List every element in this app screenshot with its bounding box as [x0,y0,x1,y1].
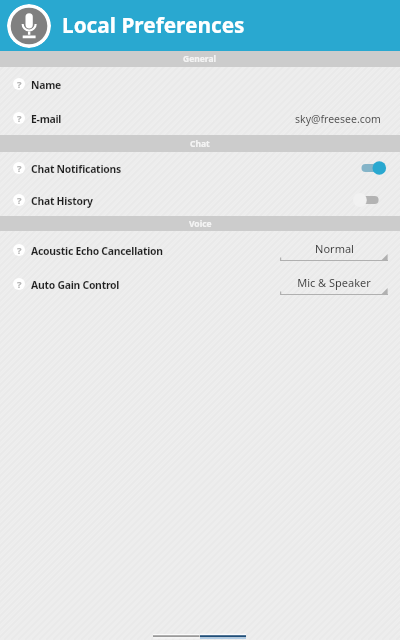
staticText: Mic & Speaker [297,275,371,290]
staticText: Local Preferences [62,11,245,39]
button[interactable]: ? [0,67,400,101]
button[interactable]: Off [353,190,389,210]
staticText: Acoustic Echo Cancellation [31,244,163,258]
staticText: Chat [190,138,210,150]
button[interactable]: ? [0,233,400,267]
button[interactable]: Mic & Speaker [280,269,388,299]
button[interactable]: ? [0,152,400,184]
staticText: E-mail [31,112,62,126]
staticText: ? [17,112,22,124]
button[interactable]: Normal [280,235,388,265]
staticText: Normal [315,241,354,256]
staticText: Name [31,78,62,92]
staticText: Chat History [31,194,93,208]
staticText: ? [17,244,22,256]
staticText: Chat Notifications [31,162,121,176]
staticText: Auto Gain Control [31,278,120,292]
button[interactable]: ? [0,101,400,135]
staticText: ? [17,278,22,290]
staticText: ? [17,194,22,206]
staticText: General [183,53,217,65]
staticText: ? [17,162,22,174]
button[interactable]: Voice recorder [7,4,51,48]
button[interactable]: ? [0,184,400,216]
staticText: ? [17,78,22,90]
button[interactable]: ? [0,267,400,301]
staticText: sky@freesee.com [295,112,381,126]
button[interactable]: On [353,158,389,178]
staticText: Voice [189,218,212,230]
